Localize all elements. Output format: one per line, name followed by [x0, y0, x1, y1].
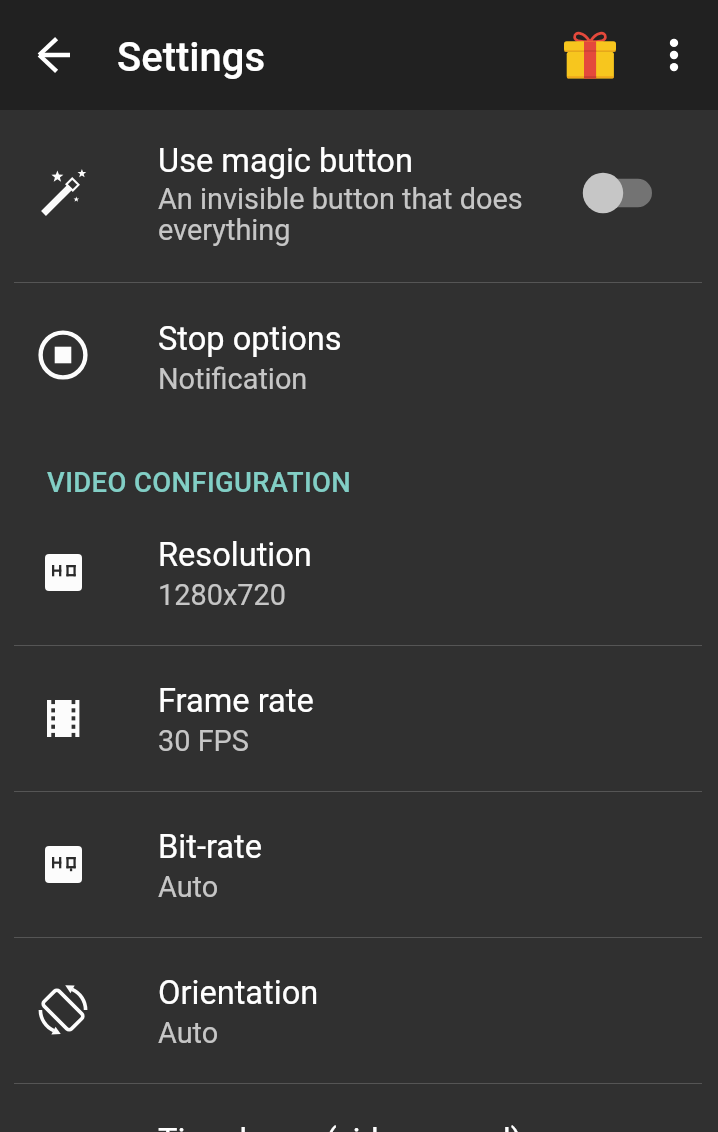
- staticText: 1280x720: [158, 578, 286, 612]
- button[interactable]: Stop options: [0, 282, 718, 428]
- button[interactable]: More options: [638, 19, 710, 91]
- button[interactable]: Time lapse (video speed): [0, 1083, 718, 1132]
- staticText: Bit-rate: [158, 828, 262, 866]
- staticText: An invisible button that does: [158, 182, 523, 216]
- button[interactable]: Frame rate: [0, 645, 718, 791]
- button[interactable]: Gift: [554, 19, 626, 91]
- staticText: Frame rate: [158, 682, 314, 720]
- staticText: Use magic button: [158, 142, 413, 180]
- staticText: VIDEO CONFIGURATION: [47, 467, 352, 499]
- staticText: Auto: [158, 870, 219, 904]
- button[interactable]: Use magic button, off: [576, 163, 666, 223]
- button[interactable]: Resolution: [0, 499, 718, 645]
- staticText: Settings: [117, 34, 266, 81]
- button[interactable]: Use magic button: [0, 110, 718, 282]
- staticText: Resolution: [158, 536, 312, 574]
- staticText: Auto: [158, 1016, 219, 1050]
- staticText: Time lapse (video speed): [158, 1122, 523, 1132]
- staticText: 30 FPS: [158, 724, 249, 758]
- button[interactable]: Bit-rate: [0, 791, 718, 937]
- button[interactable]: Orientation: [0, 937, 718, 1083]
- button[interactable]: Navigate up: [14, 15, 94, 95]
- staticText: Stop options: [158, 320, 342, 358]
- staticText: everything: [158, 213, 291, 247]
- staticText: Notification: [158, 362, 308, 396]
- staticText: Orientation: [158, 974, 319, 1012]
